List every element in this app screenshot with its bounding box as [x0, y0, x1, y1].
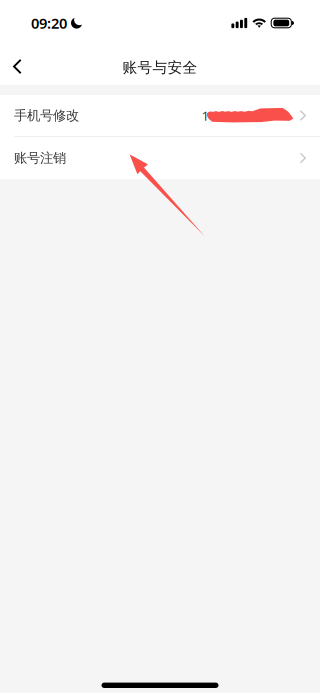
button[interactable]: 账号注销 [0, 137, 320, 179]
staticText: 账号与安全 [122, 58, 197, 76]
button[interactable]: 手机号修改 [0, 95, 320, 136]
staticText: 09:20 [31, 13, 67, 33]
staticText: 1 [202, 107, 210, 124]
staticText: 账号注销 [14, 150, 66, 166]
button[interactable]: Back [0, 47, 37, 86]
staticText: 手机号修改 [14, 107, 79, 124]
